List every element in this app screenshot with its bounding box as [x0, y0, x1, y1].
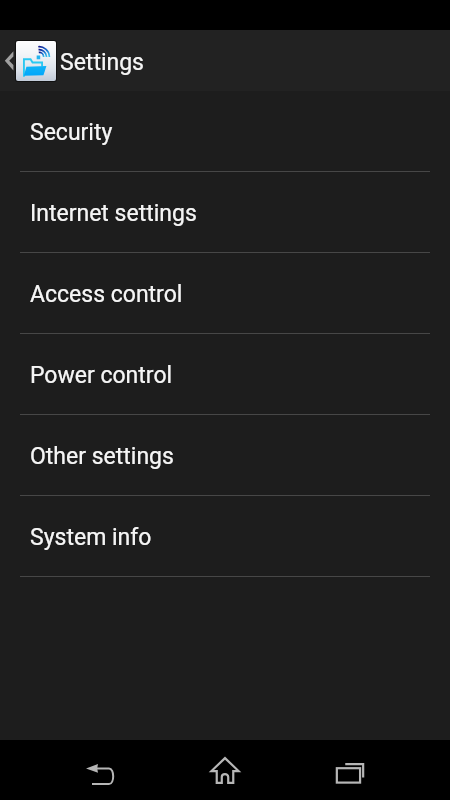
staticText: Power control [30, 362, 173, 389]
button[interactable]: Other settings [0, 415, 450, 496]
button[interactable]: Navigate up [0, 30, 60, 91]
button[interactable]: Internet settings [0, 172, 450, 253]
button[interactable]: Recent apps [287, 740, 412, 800]
button[interactable]: Power control [0, 334, 450, 415]
staticText: Internet settings [30, 200, 197, 227]
staticText: Access control [30, 281, 183, 308]
button[interactable]: Home [162, 740, 287, 800]
button[interactable]: Access control [0, 253, 450, 334]
button[interactable]: System info [0, 496, 450, 577]
button[interactable]: Security [0, 91, 450, 172]
button[interactable]: Back [37, 740, 162, 800]
staticText: Other settings [30, 443, 174, 470]
staticText: System info [30, 524, 152, 551]
staticText: Security [30, 119, 113, 146]
staticText: Settings [60, 49, 144, 76]
